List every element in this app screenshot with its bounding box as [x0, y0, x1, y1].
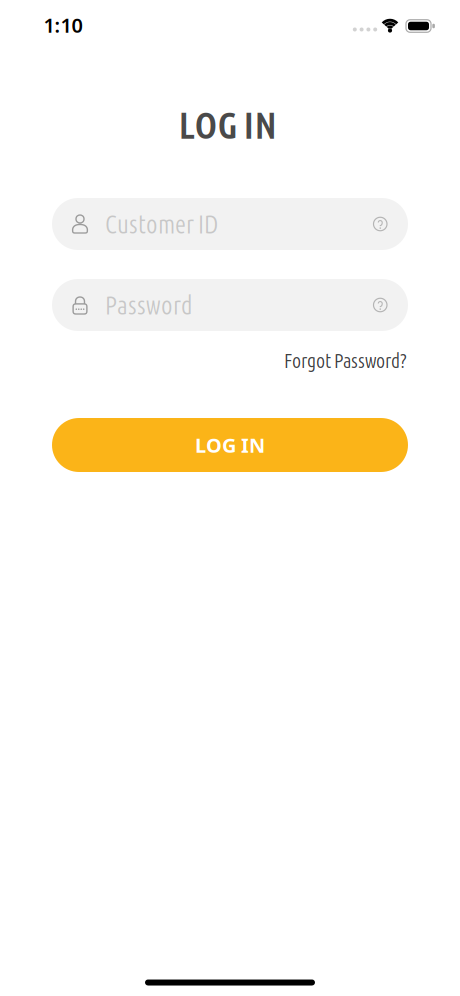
- staticText: 1:10: [43, 12, 82, 38]
- staticText: LOG IN: [178, 104, 276, 146]
- staticText: Forgot Password?: [284, 349, 407, 372]
- button[interactable]: LOG IN: [52, 418, 408, 472]
- button[interactable]: Password: [52, 279, 408, 331]
- staticText: Customer ID: [105, 210, 218, 238]
- button[interactable]: Forgot Password?: [284, 349, 407, 372]
- button[interactable]: Customer ID: [52, 198, 408, 250]
- staticText: LOG IN: [195, 432, 265, 458]
- staticText: Password: [105, 291, 193, 319]
